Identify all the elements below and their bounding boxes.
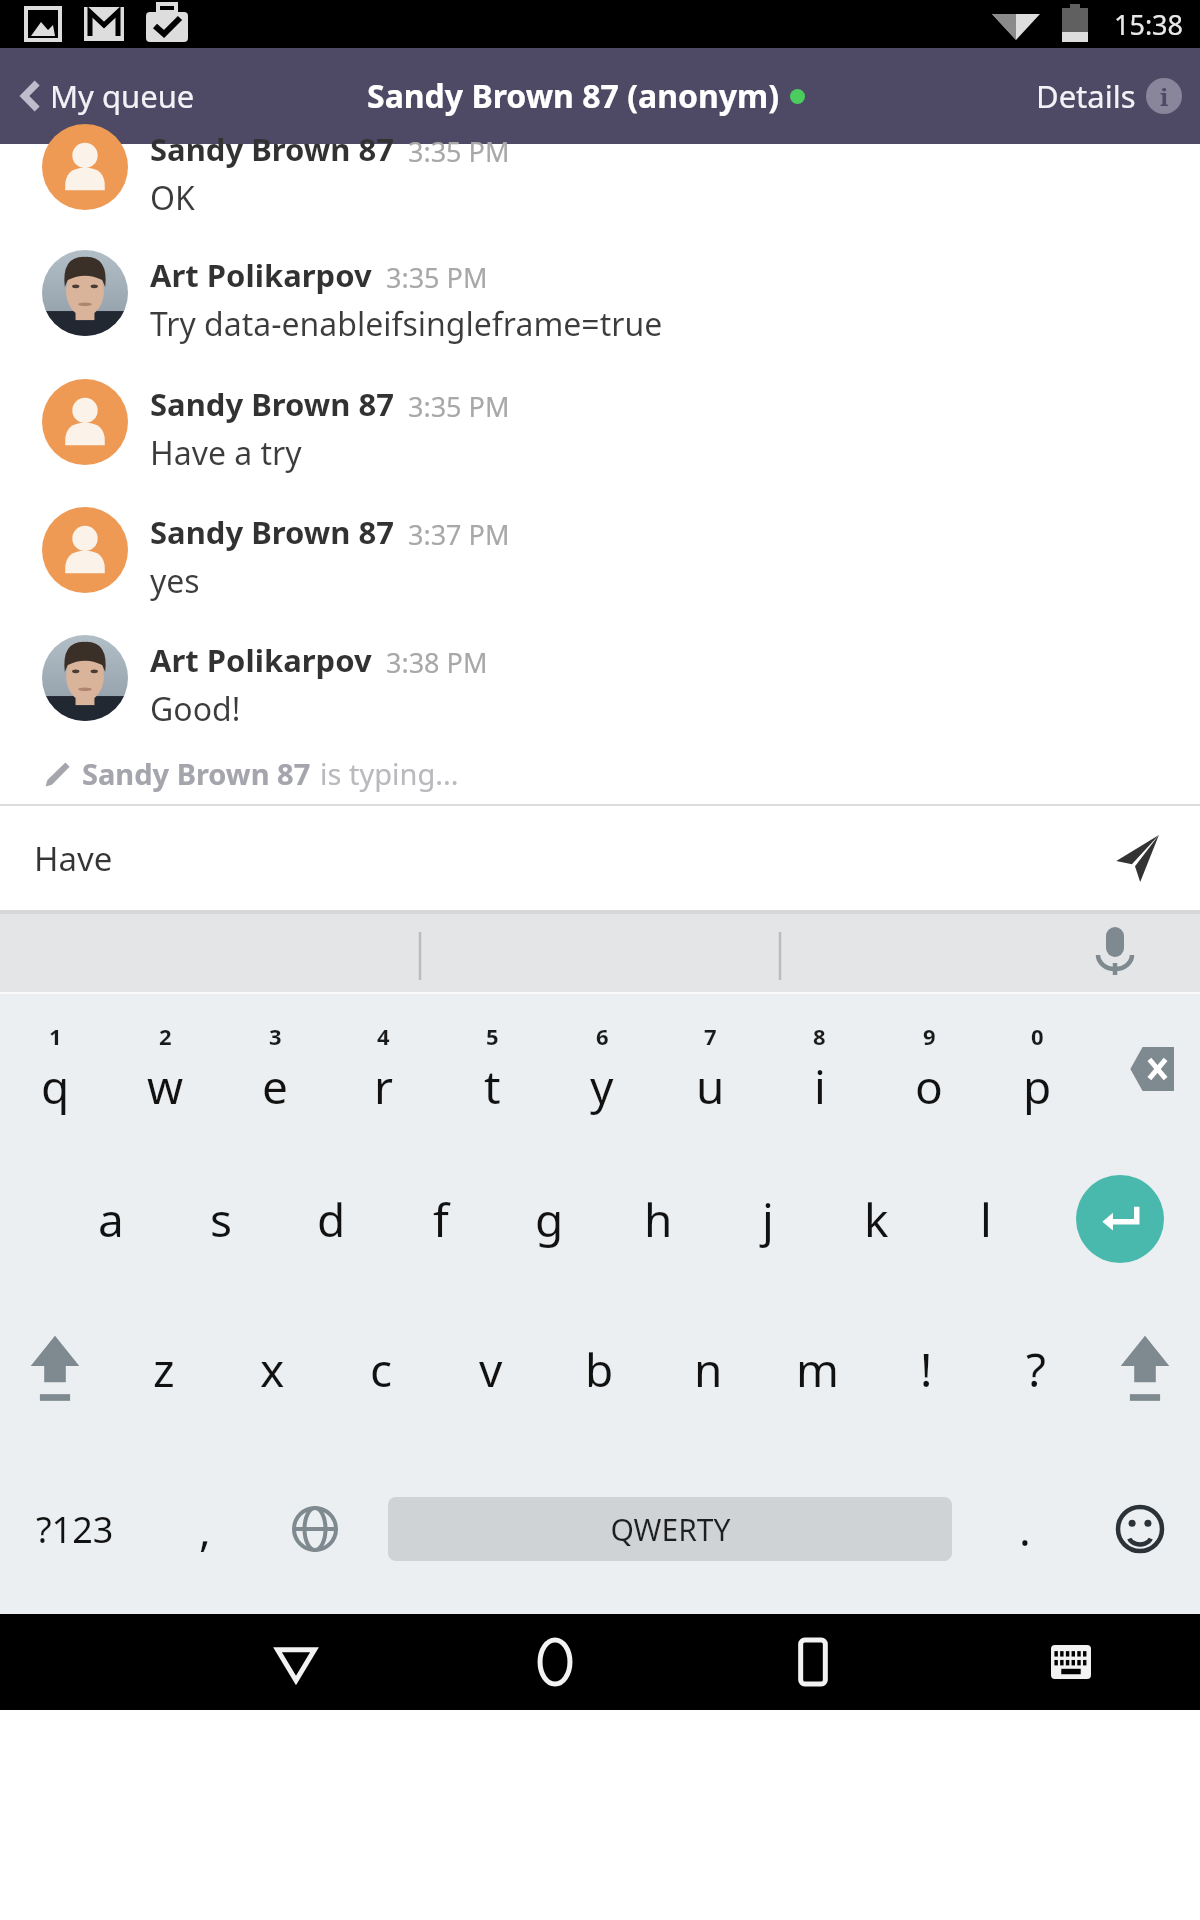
staticText: x bbox=[260, 1338, 285, 1401]
button[interactable]: v bbox=[436, 1294, 545, 1444]
button[interactable]: 0 bbox=[983, 994, 1092, 1144]
staticText: 7 bbox=[704, 1021, 717, 1051]
staticText: o bbox=[915, 1055, 943, 1118]
staticText: h bbox=[644, 1188, 673, 1251]
button[interactable]: 6 bbox=[547, 994, 656, 1144]
button[interactable]: 2 bbox=[110, 994, 220, 1144]
staticText: t bbox=[484, 1055, 501, 1118]
button[interactable]: 7 bbox=[656, 994, 765, 1144]
button[interactable]: ! bbox=[872, 1294, 981, 1444]
button[interactable]: Art Polikarpov bbox=[0, 629, 1200, 737]
button[interactable]: Enter bbox=[1040, 1144, 1200, 1294]
staticText: 9 bbox=[923, 1021, 936, 1051]
staticText: My queue bbox=[50, 75, 195, 117]
button[interactable]: a bbox=[56, 1144, 166, 1294]
staticText: n bbox=[694, 1338, 723, 1401]
button[interactable]: Shift bbox=[0, 1294, 110, 1444]
button[interactable]: Sandy Brown 87 bbox=[0, 118, 1200, 226]
staticText: QWERTY bbox=[610, 1509, 731, 1550]
staticText: . bbox=[1019, 1499, 1031, 1559]
staticText: 3:35 PM bbox=[386, 259, 488, 296]
button[interactable]: k bbox=[822, 1144, 931, 1294]
staticText: u bbox=[696, 1055, 725, 1118]
staticText: Sandy Brown 87 bbox=[150, 511, 394, 553]
staticText: s bbox=[210, 1188, 233, 1251]
staticText: Sandy Brown 87 bbox=[150, 128, 394, 170]
staticText: ! bbox=[920, 1338, 933, 1401]
staticText: b bbox=[585, 1338, 614, 1401]
button[interactable]: . bbox=[970, 1444, 1080, 1614]
staticText: , bbox=[199, 1499, 211, 1559]
staticText: z bbox=[153, 1338, 175, 1401]
staticText: i bbox=[1160, 80, 1169, 113]
staticText: yes bbox=[150, 559, 200, 603]
staticText: c bbox=[370, 1338, 393, 1401]
staticText: d bbox=[317, 1188, 346, 1251]
button[interactable]: ? bbox=[981, 1294, 1090, 1444]
staticText: Try data-enableifsingleframe=true bbox=[150, 302, 663, 346]
staticText: Details bbox=[1036, 75, 1136, 117]
button[interactable]: My queue bbox=[0, 61, 215, 131]
staticText: 3:38 PM bbox=[386, 644, 488, 681]
button[interactable]: b bbox=[545, 1294, 654, 1444]
button[interactable]: Back bbox=[250, 1616, 342, 1708]
button[interactable]: j bbox=[713, 1144, 822, 1294]
staticText: 3 bbox=[269, 1021, 282, 1051]
button[interactable]: m bbox=[763, 1294, 872, 1444]
staticText: j bbox=[762, 1188, 774, 1251]
staticText: ? bbox=[1026, 1338, 1046, 1401]
button[interactable]: Hide keyboard bbox=[1025, 1616, 1117, 1708]
staticText: Art Polikarpov bbox=[150, 254, 372, 296]
button[interactable]: Home bbox=[509, 1616, 601, 1708]
staticText: g bbox=[535, 1188, 564, 1251]
button[interactable]: 3 bbox=[220, 994, 329, 1144]
button[interactable]: Sandy Brown 87 bbox=[0, 501, 1200, 609]
staticText: a bbox=[98, 1188, 124, 1251]
button[interactable]: g bbox=[495, 1144, 604, 1294]
button[interactable]: f bbox=[386, 1144, 495, 1294]
button[interactable]: Emoji bbox=[1080, 1444, 1200, 1614]
button[interactable]: Details bbox=[1018, 61, 1200, 131]
staticText: y bbox=[590, 1055, 614, 1118]
button[interactable]: QWERTY bbox=[370, 1444, 970, 1614]
button[interactable]: 9 bbox=[874, 994, 983, 1144]
button[interactable]: 8 bbox=[765, 994, 874, 1144]
staticText: l bbox=[980, 1188, 992, 1251]
button[interactable]: z bbox=[110, 1294, 218, 1444]
button[interactable]: Backspace bbox=[1092, 994, 1200, 1144]
button[interactable]: Sandy Brown 87 bbox=[0, 373, 1200, 481]
staticText: 3:37 PM bbox=[408, 516, 510, 553]
staticText: f bbox=[433, 1188, 449, 1251]
staticText: 3:35 PM bbox=[408, 133, 510, 170]
button[interactable]: d bbox=[276, 1144, 386, 1294]
button[interactable]: x bbox=[218, 1294, 327, 1444]
button[interactable]: Art Polikarpov bbox=[0, 244, 1200, 352]
staticText: 15:38 bbox=[1114, 6, 1184, 43]
staticText: r bbox=[374, 1055, 393, 1118]
button[interactable]: Recent apps bbox=[767, 1616, 859, 1708]
button[interactable]: 1 bbox=[0, 994, 110, 1144]
button[interactable]: s bbox=[166, 1144, 276, 1294]
staticText: ?123 bbox=[36, 1505, 114, 1554]
staticText: m bbox=[796, 1338, 840, 1401]
staticText: Sandy Brown 87 (anonym) bbox=[367, 74, 780, 118]
button[interactable]: Change language bbox=[260, 1444, 370, 1614]
button[interactable]: n bbox=[654, 1294, 763, 1444]
staticText: OK bbox=[150, 176, 195, 220]
staticText: Good! bbox=[150, 687, 241, 731]
button[interactable]: 5 bbox=[438, 994, 547, 1144]
staticText: e bbox=[262, 1055, 288, 1118]
button[interactable]: Send message bbox=[1100, 823, 1170, 893]
staticText: 8 bbox=[813, 1021, 826, 1051]
button[interactable]: h bbox=[604, 1144, 713, 1294]
button[interactable]: 4 bbox=[329, 994, 438, 1144]
button[interactable]: c bbox=[327, 1294, 436, 1444]
staticText: Have a try bbox=[150, 431, 302, 475]
staticText: 6 bbox=[596, 1021, 609, 1051]
button[interactable]: Shift bbox=[1090, 1294, 1200, 1444]
button[interactable]: l bbox=[931, 1144, 1040, 1294]
button[interactable]: , bbox=[150, 1444, 260, 1614]
button[interactable]: ?123 bbox=[0, 1444, 150, 1614]
staticText: 1 bbox=[49, 1021, 62, 1051]
staticText: k bbox=[864, 1188, 889, 1251]
